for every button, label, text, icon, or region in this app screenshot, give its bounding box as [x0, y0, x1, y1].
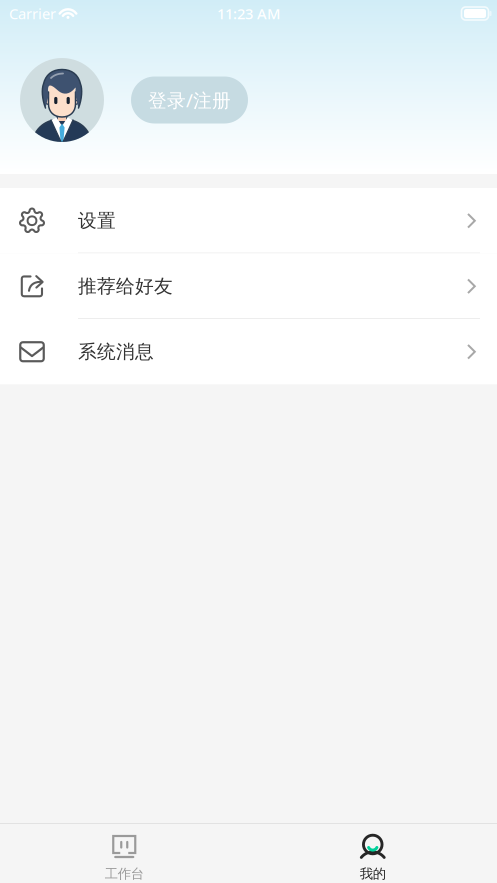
staticText: 我的	[360, 866, 386, 882]
button[interactable]: 系统消息	[0, 319, 497, 384]
staticText: 登录/注册	[148, 88, 231, 112]
staticText: 设置	[78, 209, 116, 232]
button[interactable]: 登录/注册	[131, 76, 248, 123]
staticText: 11:23 AM	[217, 4, 280, 23]
staticText: Carrier	[9, 4, 56, 23]
button[interactable]: 推荐给好友	[0, 253, 497, 319]
button[interactable]: 我的	[248, 824, 497, 883]
staticText: 工作台	[105, 866, 144, 882]
staticText: 系统消息	[78, 340, 154, 363]
button[interactable]: 工作台	[0, 824, 248, 883]
button[interactable]: 设置	[0, 188, 497, 253]
staticText: 推荐给好友	[78, 275, 173, 298]
